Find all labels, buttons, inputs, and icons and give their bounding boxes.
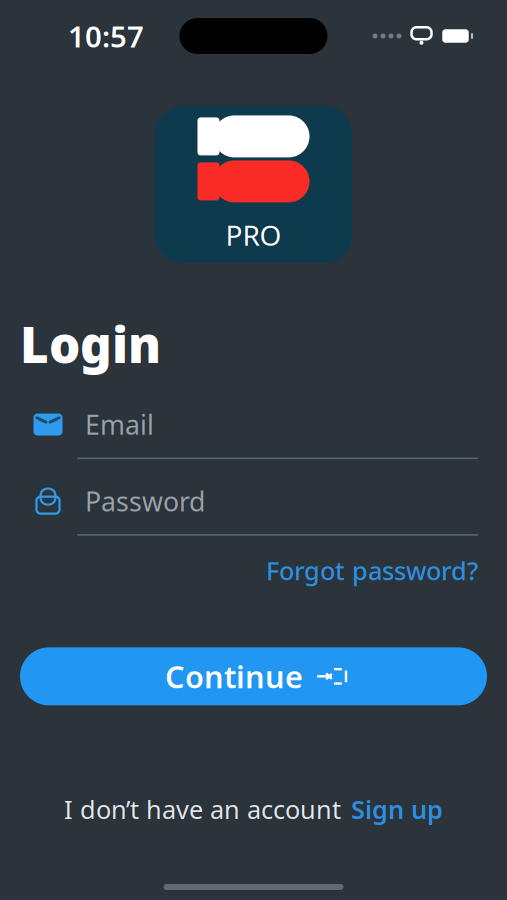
button[interactable]: Sign up [351,788,443,830]
staticText: Sign up [351,792,443,826]
staticText: Password [85,483,205,519]
staticText: I don’t have an account [64,792,341,826]
staticText: Email [85,407,154,442]
button[interactable]: Forgot password? [266,550,478,591]
staticText: 10:57 [68,16,144,55]
button[interactable]: Continue [20,647,487,705]
staticText: Forgot password? [266,554,478,587]
staticText: PRO [225,216,281,254]
staticText: Login [20,311,161,376]
staticText: Continue [165,656,303,697]
